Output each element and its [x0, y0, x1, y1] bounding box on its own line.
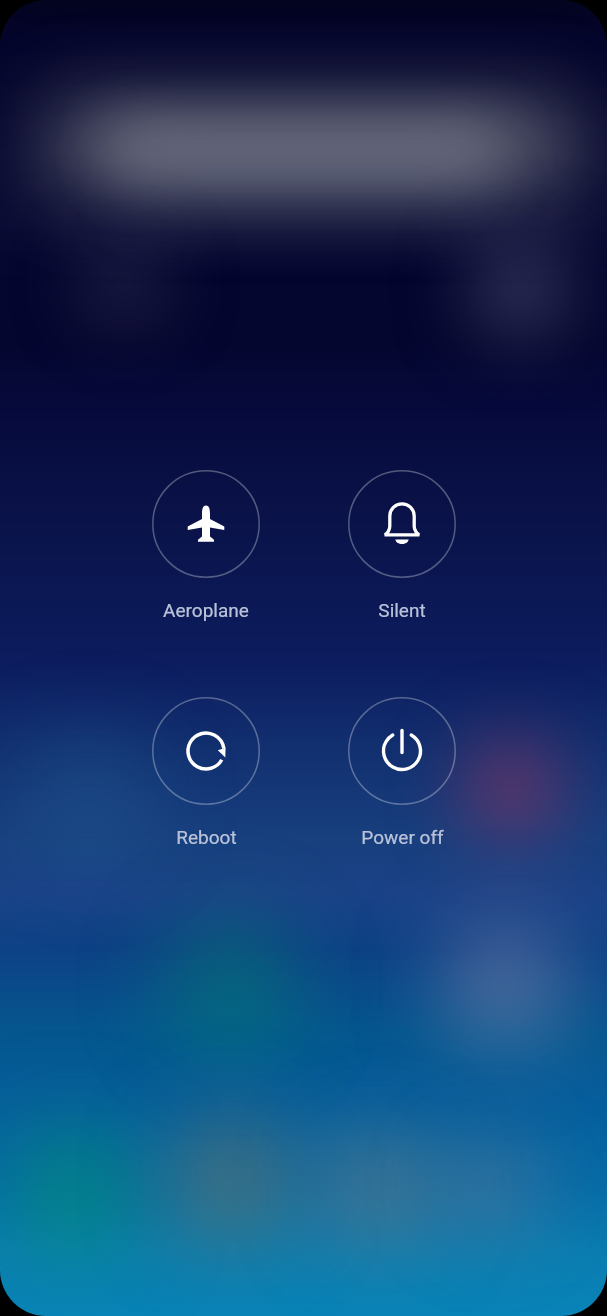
staticText: Reboot [176, 826, 237, 848]
button[interactable]: Silent [348, 470, 456, 621]
staticText: Silent [378, 599, 426, 621]
button[interactable]: Reboot [152, 697, 260, 848]
staticText: Aeroplane [163, 599, 249, 621]
button[interactable]: Power off [348, 697, 456, 848]
staticText: Power off [361, 826, 444, 848]
button[interactable]: Aeroplane [152, 470, 260, 621]
